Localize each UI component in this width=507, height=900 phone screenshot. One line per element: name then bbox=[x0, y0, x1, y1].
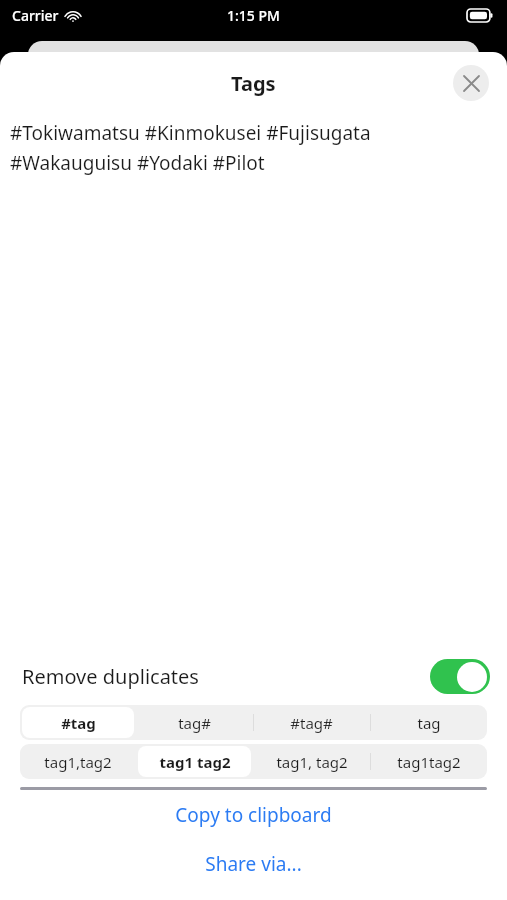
staticText: Share via... bbox=[205, 851, 302, 877]
staticText: tag1tag2 bbox=[397, 752, 461, 772]
button[interactable]: Close bbox=[453, 65, 489, 101]
staticText: tag1, tag2 bbox=[276, 752, 348, 772]
button[interactable]: tag1 tag2 bbox=[136, 744, 253, 779]
button[interactable]: Remove duplicates bbox=[0, 650, 507, 702]
staticText: tag1,tag2 bbox=[44, 752, 112, 772]
button[interactable]: tag bbox=[370, 705, 487, 740]
button[interactable]: tag1, tag2 bbox=[253, 744, 370, 779]
button[interactable]: tag1,tag2 bbox=[20, 744, 136, 779]
staticText: Carrier bbox=[12, 6, 59, 25]
button[interactable]: #tag# bbox=[253, 705, 370, 740]
staticText: tag1 tag2 bbox=[159, 752, 231, 772]
button[interactable]: tag# bbox=[136, 705, 253, 740]
button[interactable]: tag1tag2 bbox=[370, 744, 487, 779]
button[interactable]: Copy to clipboard bbox=[0, 790, 507, 840]
staticText: 1:15 PM bbox=[227, 6, 280, 25]
staticText: Remove duplicates bbox=[22, 663, 199, 690]
staticText: Tags bbox=[231, 70, 276, 97]
button[interactable]: Share via... bbox=[0, 840, 507, 888]
button[interactable]: #tag bbox=[20, 705, 136, 740]
staticText: tag# bbox=[178, 713, 211, 733]
staticText: #tag# bbox=[290, 713, 333, 733]
staticText: Copy to clipboard bbox=[175, 802, 332, 828]
staticText: tag bbox=[417, 713, 441, 733]
button[interactable]: Remove duplicates toggle bbox=[430, 659, 490, 694]
staticText: #Tokiwamatsu #Kinmokusei #Fujisugata #Wa… bbox=[10, 120, 497, 175]
staticText: #tag bbox=[61, 713, 96, 733]
